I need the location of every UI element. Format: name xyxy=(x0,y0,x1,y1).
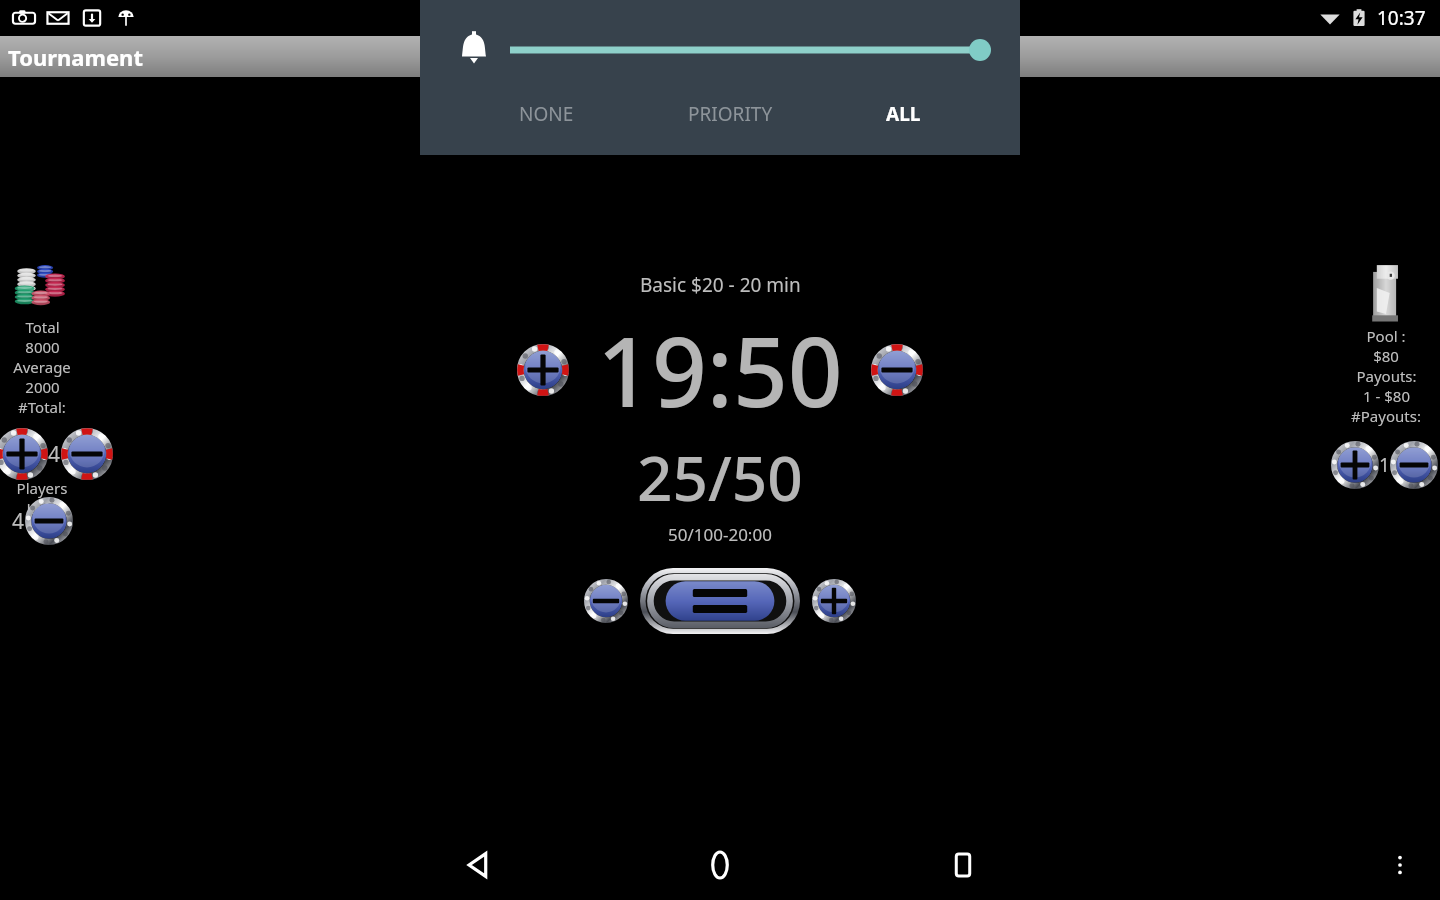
button[interactable]: Decrease players left xyxy=(25,497,73,545)
button[interactable]: Home xyxy=(692,837,748,893)
staticText: 25/50 xyxy=(637,435,803,519)
staticText: PRIORITY xyxy=(688,101,773,127)
staticText: Players Left: xyxy=(0,478,84,518)
staticText: Pool : xyxy=(1366,326,1406,346)
button[interactable]: Pause timer xyxy=(640,568,800,634)
staticText: Payouts: xyxy=(1356,366,1417,386)
button[interactable]: More options xyxy=(1378,843,1422,887)
staticText: 4 xyxy=(12,507,25,536)
staticText: 19:50 xyxy=(597,304,843,435)
staticText: Total xyxy=(25,317,60,337)
button[interactable]: Recents xyxy=(935,837,991,893)
button[interactable]: Back xyxy=(452,837,508,893)
staticText: $80 xyxy=(1373,346,1399,366)
staticText: #Payouts: xyxy=(1351,406,1421,426)
button[interactable]: PRIORITY xyxy=(674,95,787,133)
button[interactable]: Previous level xyxy=(584,579,628,623)
staticText: 1 - $80 xyxy=(1363,386,1410,406)
staticText: Tournament xyxy=(8,42,143,72)
button[interactable]: Increase total players xyxy=(0,428,48,480)
staticText: #Total: xyxy=(18,397,66,417)
button[interactable]: Subtract time xyxy=(871,344,923,396)
button[interactable]: Ringer mode xyxy=(448,24,500,76)
staticText: 10:37 xyxy=(1377,5,1426,31)
staticText: 2000 xyxy=(25,377,60,397)
button[interactable]: Volume slider xyxy=(510,30,990,70)
button[interactable]: Add time xyxy=(517,344,569,396)
staticText: NONE xyxy=(519,101,574,127)
staticText: ALL xyxy=(886,101,921,127)
staticText: 8000 xyxy=(25,337,60,357)
staticText: Average xyxy=(13,357,71,377)
button[interactable]: ALL xyxy=(872,95,935,133)
button[interactable]: Decrease payouts xyxy=(1390,441,1438,489)
staticText: 4 xyxy=(48,440,61,469)
button[interactable]: Decrease total players xyxy=(61,428,113,480)
button[interactable]: NONE xyxy=(505,95,588,133)
staticText: Basic $20 - 20 min xyxy=(640,272,801,298)
button[interactable]: Next level xyxy=(812,579,856,623)
staticText: 50/100-20:00 xyxy=(668,523,772,546)
staticText: 1 xyxy=(1379,452,1390,478)
button[interactable]: Increase payouts xyxy=(1331,441,1379,489)
